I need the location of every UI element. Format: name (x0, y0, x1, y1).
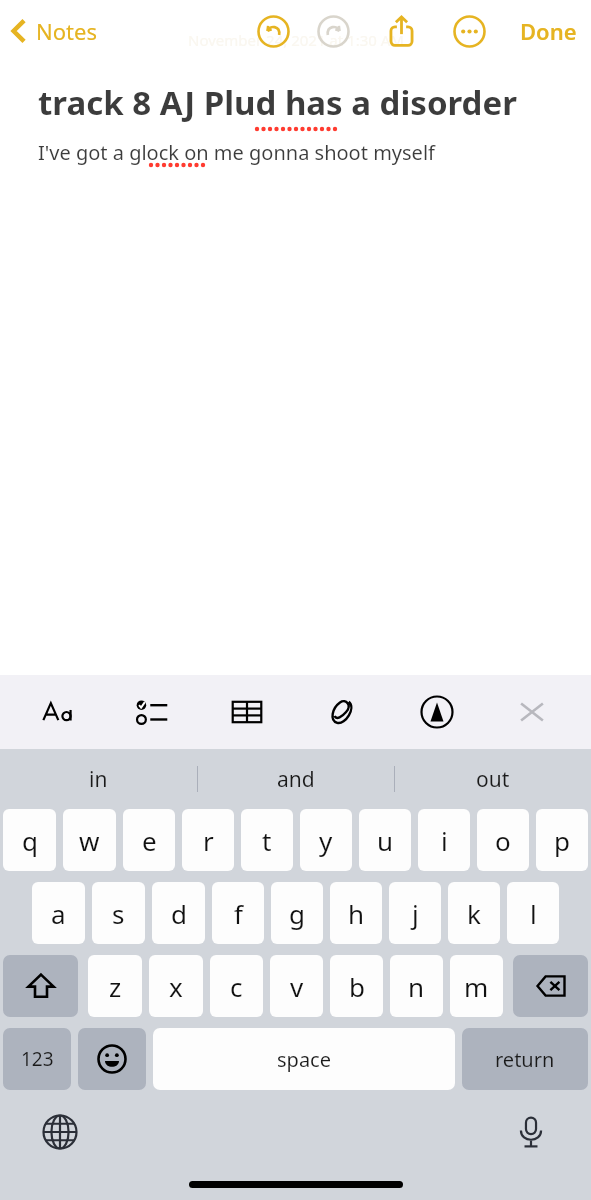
staticText: a (51, 896, 66, 931)
button[interactable]: b (330, 955, 383, 1017)
button[interactable]: g (271, 882, 323, 944)
staticText: h (348, 896, 365, 931)
button[interactable]: Done (506, 8, 591, 54)
button[interactable]: h (330, 882, 382, 944)
button[interactable]: d (152, 882, 205, 944)
staticText: d (171, 896, 187, 931)
button[interactable]: 123 (3, 1028, 71, 1090)
button[interactable]: Close keyboard (484, 675, 579, 749)
button[interactable]: Change keyboard (38, 1110, 82, 1154)
button[interactable]: j (389, 882, 441, 944)
button[interactable]: Share (378, 8, 424, 54)
staticText: Done (520, 16, 577, 46)
staticText: m (464, 969, 489, 1004)
button[interactable]: y (300, 809, 352, 871)
staticText: r (203, 823, 214, 858)
staticText: f (234, 896, 243, 931)
button[interactable]: w (63, 809, 116, 871)
button[interactable]: Redo (310, 8, 356, 54)
staticText: return (495, 1046, 555, 1073)
staticText: p (554, 823, 570, 858)
button[interactable]: c (210, 955, 263, 1017)
button[interactable]: f (212, 882, 264, 944)
button[interactable]: p (536, 809, 588, 871)
button[interactable]: Emoji (78, 1028, 146, 1090)
staticText: y (319, 823, 333, 858)
staticText: n (408, 969, 425, 1004)
button[interactable]: r (182, 809, 234, 871)
staticText: 123 (21, 1046, 54, 1072)
button[interactable]: n (390, 955, 443, 1017)
button[interactable]: More (446, 8, 492, 54)
staticText: q (22, 823, 38, 858)
staticText: November 24, 2021 at 1:30 AM (188, 30, 404, 50)
staticText: u (377, 823, 394, 858)
button[interactable]: e (123, 809, 175, 871)
staticText: b (349, 969, 365, 1004)
button[interactable]: Table (200, 675, 294, 749)
staticText: space (277, 1046, 331, 1073)
staticText: c (230, 969, 243, 1004)
button[interactable]: space (153, 1028, 455, 1090)
staticText: j (412, 896, 419, 931)
button[interactable]: Attach (294, 675, 389, 749)
staticText: z (109, 969, 122, 1004)
staticText: l (530, 896, 537, 931)
staticText: w (79, 823, 100, 858)
staticText: t (262, 823, 272, 858)
button[interactable]: Backspace (513, 955, 588, 1017)
staticText: in (89, 765, 108, 794)
button[interactable]: Markup (389, 675, 484, 749)
staticText: Notes (36, 16, 97, 46)
button[interactable]: x (149, 955, 203, 1017)
staticText: track 8 AJ Plud has a disorder (38, 80, 517, 125)
button[interactable]: Undo (250, 8, 296, 54)
button[interactable]: o (477, 809, 529, 871)
button[interactable]: v (270, 955, 323, 1017)
staticText: k (467, 896, 481, 931)
button[interactable]: return (462, 1028, 588, 1090)
button[interactable]: in (0, 749, 197, 809)
button[interactable]: l (507, 882, 559, 944)
button[interactable]: Notes (0, 10, 105, 52)
button[interactable]: q (3, 809, 56, 871)
staticText: e (142, 823, 157, 858)
button[interactable]: u (359, 809, 411, 871)
button[interactable]: Text format (12, 675, 106, 749)
staticText: and (277, 765, 315, 794)
staticText: i (441, 823, 448, 858)
staticText: out (476, 765, 510, 794)
button[interactable]: out (395, 749, 591, 809)
button[interactable]: a (32, 882, 85, 944)
button[interactable]: and (198, 749, 394, 809)
button[interactable]: z (88, 955, 142, 1017)
staticText: g (289, 896, 305, 931)
button[interactable]: m (450, 955, 503, 1017)
staticText: x (169, 969, 183, 1004)
staticText: I've got a glock on me gonna shoot mysel… (38, 139, 435, 166)
button[interactable]: t (241, 809, 293, 871)
button[interactable]: k (448, 882, 500, 944)
staticText: v (290, 969, 304, 1004)
staticText: o (495, 823, 511, 858)
button[interactable]: s (92, 882, 145, 944)
button[interactable]: i (418, 809, 470, 871)
staticText: s (112, 896, 125, 931)
button[interactable]: Dictate (509, 1110, 553, 1154)
button[interactable]: Checklist (106, 675, 200, 749)
button[interactable]: Shift (3, 955, 78, 1017)
